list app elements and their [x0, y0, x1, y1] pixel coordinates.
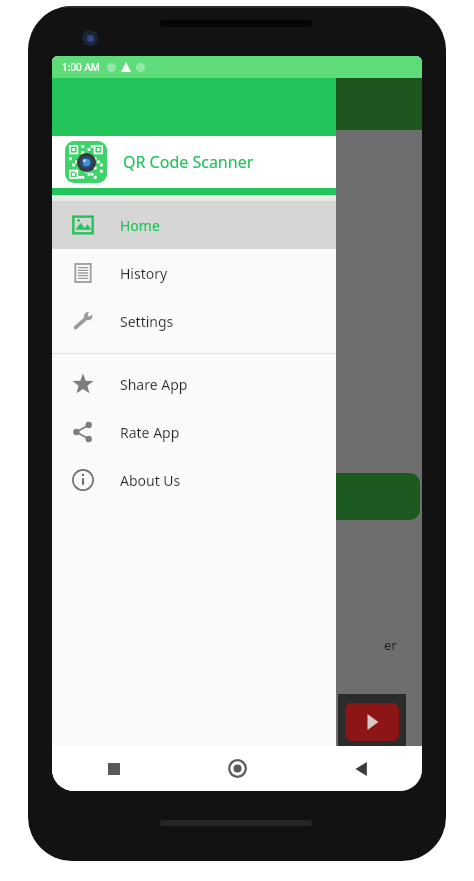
staticText: Rate App	[120, 423, 180, 442]
button[interactable]: About Us	[52, 456, 336, 504]
staticText: About Us	[120, 471, 181, 490]
staticText: QR Code Scanner	[123, 151, 254, 173]
button[interactable]: Settings	[52, 297, 336, 345]
staticText: 1:00 AM	[62, 60, 100, 74]
staticText: History	[120, 264, 168, 283]
button[interactable]: History	[52, 249, 336, 297]
staticText: Home	[120, 216, 160, 235]
button[interactable]: Recent apps	[52, 746, 176, 791]
staticText: er	[384, 636, 397, 654]
staticText: Share App	[120, 375, 188, 394]
staticText: Settings	[120, 312, 174, 331]
button[interactable]: Home	[176, 746, 299, 791]
button[interactable]: Share App	[52, 360, 336, 408]
button[interactable]: Home	[52, 201, 336, 249]
button[interactable]: Rate App	[52, 408, 336, 456]
button[interactable]: Back	[299, 746, 422, 791]
